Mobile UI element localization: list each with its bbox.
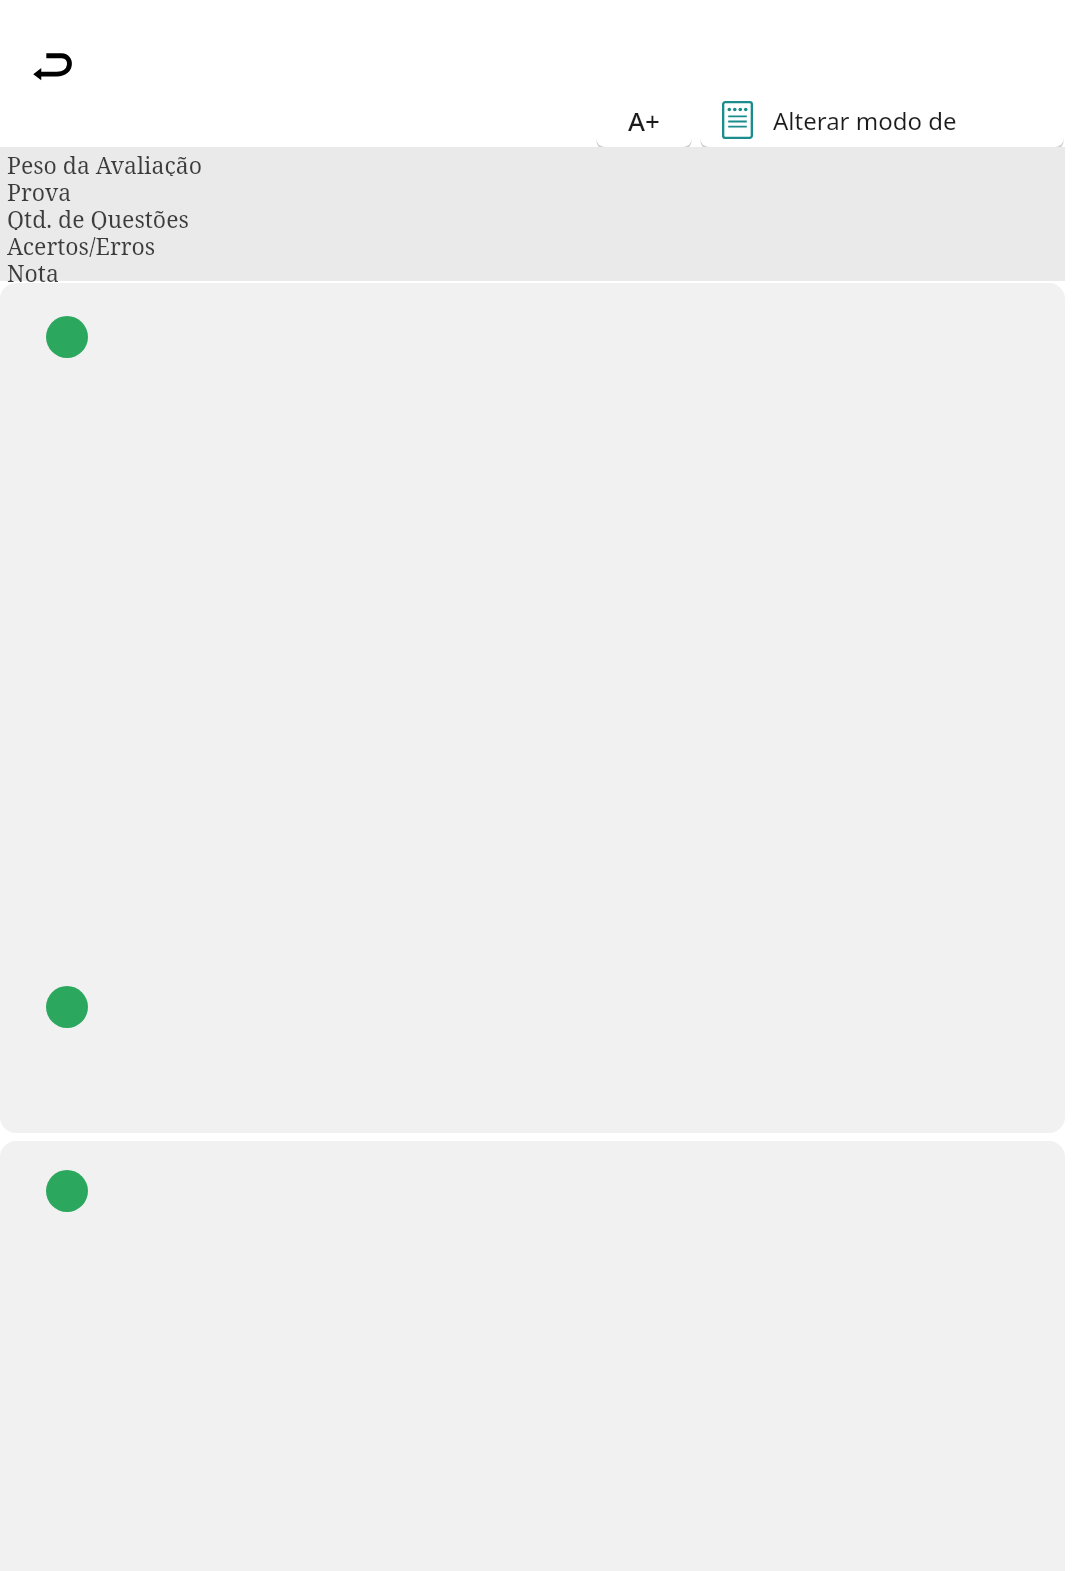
- staticText: Nota: [7, 257, 59, 283]
- button[interactable]: [0, 283, 1065, 1133]
- staticText: Alterar modo de visualização: [773, 104, 1046, 137]
- button[interactable]: Alterar modo de visualização: [700, 93, 1064, 147]
- staticText: A+: [628, 103, 660, 138]
- staticText: Prova: [7, 176, 72, 203]
- button[interactable]: [0, 1141, 1065, 1571]
- staticText: Qtd. de Questões: [7, 203, 189, 230]
- button[interactable]: Voltar: [18, 32, 88, 102]
- staticText: Acertos/Erros: [7, 230, 156, 257]
- button[interactable]: Aumentar fonte: [596, 93, 692, 147]
- staticText: Peso da Avaliação: [7, 149, 202, 176]
